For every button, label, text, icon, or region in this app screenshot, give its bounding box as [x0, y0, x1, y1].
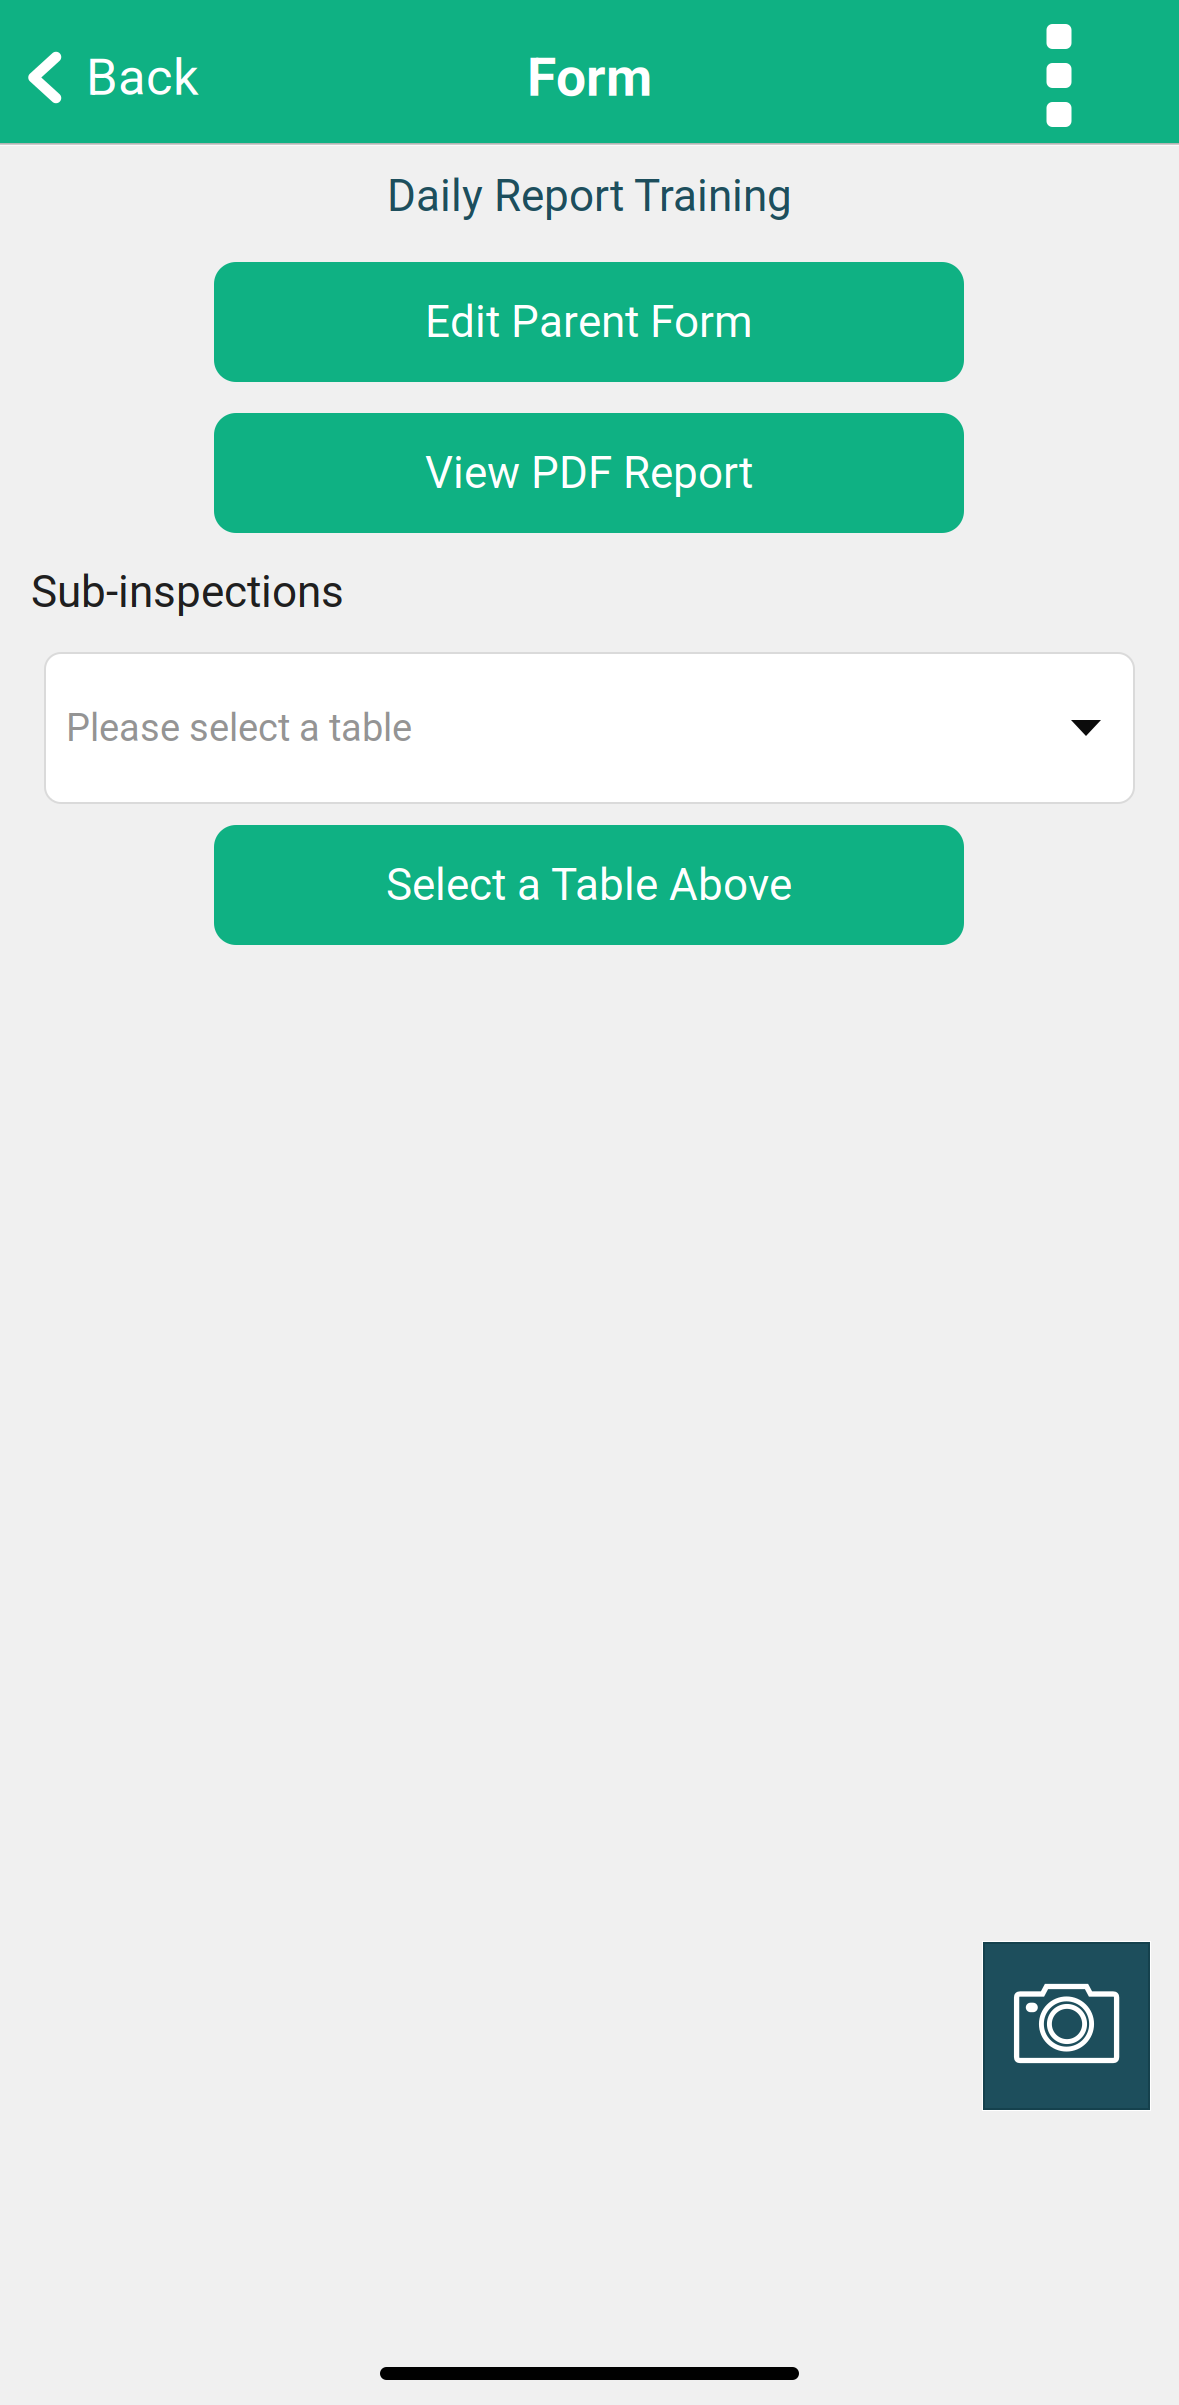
button[interactable]: Select a Table Above	[214, 825, 964, 945]
staticText: Form	[527, 46, 652, 109]
staticText: View PDF Report	[425, 447, 753, 499]
button[interactable]: Back	[0, 6, 223, 149]
button[interactable]: View PDF Report	[214, 413, 964, 533]
staticText: Back	[86, 48, 199, 107]
staticText: Sub-inspections	[31, 566, 344, 618]
button[interactable]: More options	[1004, 4, 1114, 147]
staticText: Select a Table Above	[386, 859, 792, 911]
staticText: Daily Report Training	[387, 170, 792, 222]
staticText: Edit Parent Form	[425, 296, 753, 348]
staticText: Please select a table	[66, 706, 412, 750]
button[interactable]: Edit Parent Form	[214, 262, 964, 382]
button[interactable]: Take photo	[982, 1941, 1151, 2111]
button[interactable]: Please select a table	[45, 653, 1134, 803]
